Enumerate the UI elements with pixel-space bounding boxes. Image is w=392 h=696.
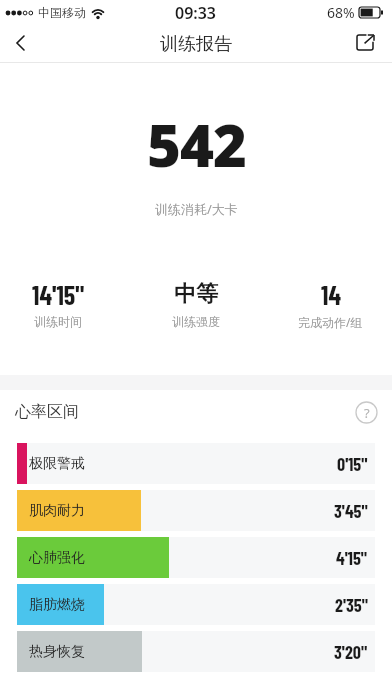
staticText: ? — [364, 404, 370, 422]
button[interactable]: 热身恢复 — [17, 631, 375, 672]
button[interactable]: 心肺强化 — [17, 537, 375, 578]
staticText: 肌肉耐力 — [29, 502, 85, 520]
button[interactable]: 脂肪燃烧 — [17, 584, 375, 625]
staticText: 2'35" — [335, 594, 368, 616]
staticText: 中等 — [174, 280, 218, 308]
staticText: 09:33 — [175, 2, 217, 24]
staticText: 542 — [147, 105, 246, 173]
staticText: 3'20" — [334, 641, 368, 663]
staticText: 心率区间 — [15, 402, 79, 422]
staticText: 中国移动 — [38, 5, 86, 20]
staticText: 0'15" — [337, 453, 368, 475]
staticText: 训练消耗/大卡 — [155, 200, 238, 218]
button[interactable]: 极限警戒 — [17, 443, 375, 484]
staticText: 心肺强化 — [29, 549, 85, 567]
staticText: 完成动作/组 — [298, 314, 363, 330]
staticText: 68% — [327, 3, 355, 22]
button[interactable] — [0, 25, 40, 63]
staticText: 14 — [321, 279, 341, 310]
staticText: 训练时间 — [34, 314, 82, 329]
staticText: 脂肪燃烧 — [29, 596, 85, 614]
staticText: 3'45" — [334, 500, 368, 522]
staticText: 热身恢复 — [29, 643, 85, 661]
button[interactable] — [342, 25, 388, 63]
staticText: 极限警戒 — [29, 455, 85, 473]
staticText: 14'15" — [32, 279, 85, 310]
staticText: 4'15" — [336, 547, 368, 569]
button[interactable]: 肌肉耐力 — [17, 490, 375, 531]
button[interactable]: ? — [355, 401, 378, 424]
staticText: 训练报告 — [160, 33, 232, 56]
staticText: 训练强度 — [172, 314, 220, 329]
